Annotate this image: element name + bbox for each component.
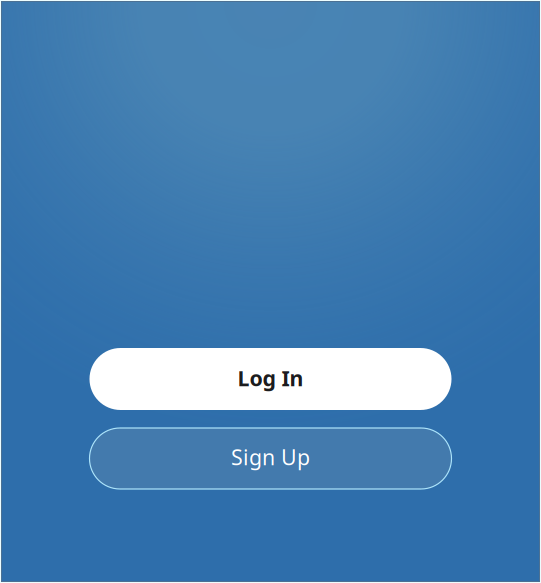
button[interactable]: Log In [89, 348, 451, 410]
staticText: Log In [237, 364, 303, 392]
button[interactable]: Sign Up [89, 428, 451, 489]
staticText: Sign Up [231, 443, 310, 471]
